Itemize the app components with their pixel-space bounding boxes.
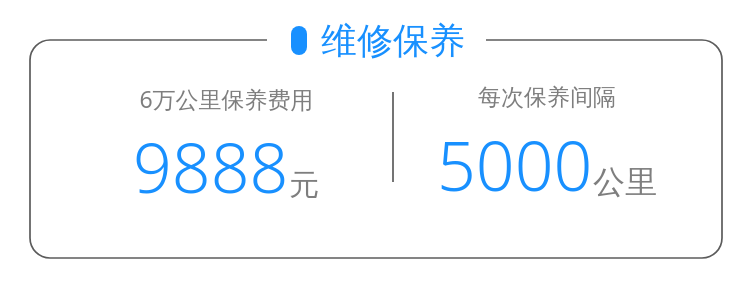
staticText: 6万公里保养费用 (139, 83, 314, 114)
other: 维修保养 (291, 26, 307, 55)
staticText: 公里 (593, 162, 657, 202)
staticText: 9888 (133, 120, 289, 213)
button[interactable]: 6万公里保养费用 (61, 83, 391, 213)
staticText: 5000 (437, 118, 593, 211)
button[interactable]: 每次保养间隔 (382, 83, 712, 211)
staticText: 元 (289, 166, 319, 204)
staticText: 每次保养间隔 (478, 83, 616, 112)
button[interactable]: 维修保养 (291, 18, 465, 63)
staticText: 维修保养 (321, 18, 465, 63)
